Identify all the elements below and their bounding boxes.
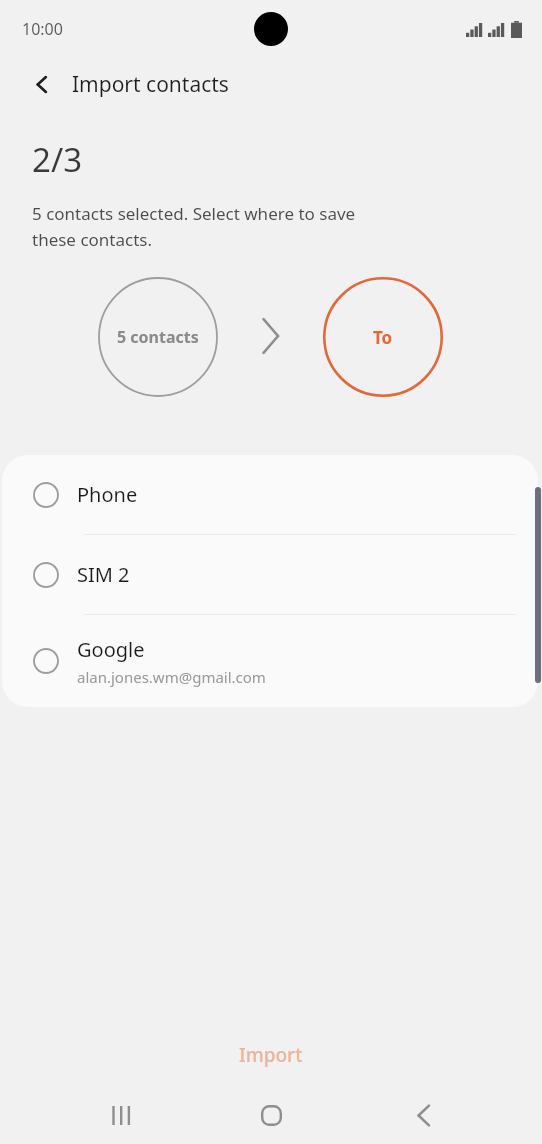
button[interactable]: Recent apps <box>94 1087 150 1143</box>
staticText: alan.jones.wm@gmail.com <box>77 667 266 687</box>
staticText: SIM 2 <box>77 561 130 588</box>
staticText: To <box>373 326 393 349</box>
button[interactable]: To <box>323 277 443 397</box>
button[interactable]: SIM 2 <box>2 535 538 614</box>
staticText: Import <box>239 1042 303 1068</box>
button[interactable]: Back <box>22 64 62 104</box>
button[interactable]: Phone <box>2 455 538 534</box>
staticText: Google <box>77 636 145 663</box>
staticText: 10:00 <box>22 18 63 40</box>
button[interactable]: Google <box>2 615 538 707</box>
button[interactable]: Back <box>395 1087 451 1143</box>
button[interactable]: Home <box>243 1087 299 1143</box>
staticText: Import contacts <box>72 70 229 99</box>
staticText: Phone <box>77 481 138 508</box>
staticText: 5 contacts <box>117 326 199 348</box>
staticText: 5 contacts selected. Select where to sav… <box>32 202 356 251</box>
button[interactable]: Import <box>219 1034 323 1076</box>
button[interactable]: 5 contacts <box>98 277 218 397</box>
staticText: 2/3 <box>32 137 83 182</box>
